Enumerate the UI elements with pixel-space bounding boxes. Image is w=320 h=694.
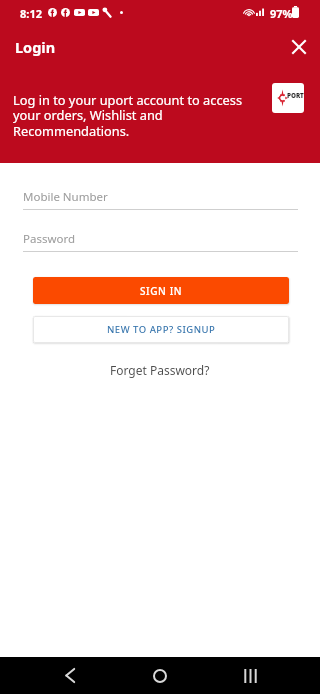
button[interactable]: Home	[136, 657, 184, 694]
button[interactable]: Close	[282, 30, 315, 63]
staticText: Forget Password?	[110, 362, 210, 378]
staticText: SIGN IN	[140, 284, 183, 298]
button[interactable]: Forget Password?	[100, 358, 220, 382]
staticText: Log in to your uport account to access y…	[13, 91, 253, 140]
button[interactable]: Recents	[226, 657, 274, 694]
staticText: 8:12	[20, 6, 42, 21]
staticText: Password	[23, 231, 76, 247]
staticText: PORT	[287, 91, 304, 100]
staticText: NEW TO APP? SIGNUP	[107, 323, 216, 336]
staticText: 97%	[270, 6, 293, 21]
button[interactable]: Back	[46, 657, 94, 694]
button[interactable]: SIGN IN	[33, 277, 289, 304]
staticText: Login	[15, 37, 56, 57]
button[interactable]: NEW TO APP? SIGNUP	[33, 316, 289, 343]
staticText: Mobile Number	[23, 189, 108, 205]
